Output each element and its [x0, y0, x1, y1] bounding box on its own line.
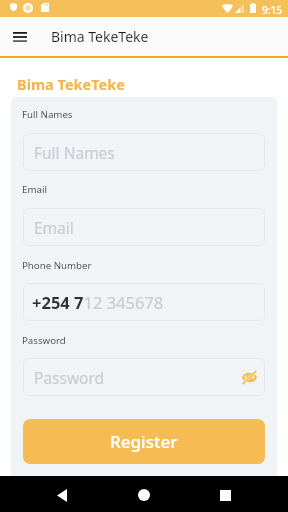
- staticText: Bima TekeTeke: [51, 27, 149, 46]
- staticText: Password: [34, 367, 105, 388]
- staticText: +254 712 345678: [32, 291, 164, 313]
- button[interactable]: Password: [23, 358, 265, 396]
- staticText: Email: [22, 183, 47, 196]
- button[interactable]: Menu: [6, 23, 34, 51]
- staticText: Full Names: [34, 142, 115, 163]
- staticText: Full Names: [22, 108, 73, 121]
- button[interactable]: Full Names: [23, 133, 265, 171]
- button[interactable]: Register: [23, 419, 265, 464]
- button[interactable]: +254 712 345678: [23, 283, 265, 321]
- button[interactable]: Home: [128, 479, 160, 511]
- button[interactable]: Back: [46, 479, 78, 511]
- staticText: 9:15: [262, 3, 282, 17]
- staticText: Bima TekeTeke: [17, 74, 125, 94]
- button[interactable]: Toggle password visibility: [237, 365, 261, 389]
- staticText: Email: [34, 217, 74, 238]
- button[interactable]: Email: [23, 208, 265, 246]
- staticText: Password: [22, 334, 66, 347]
- staticText: Register: [110, 430, 178, 453]
- staticText: Phone Number: [22, 259, 92, 272]
- button[interactable]: Recents: [209, 479, 241, 511]
